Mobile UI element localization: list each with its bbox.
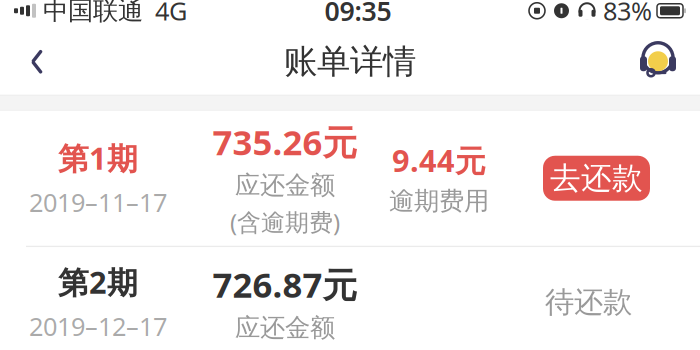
staticText: 726.87元 [212, 261, 357, 307]
staticText: (含逾期费) [230, 206, 340, 238]
button[interactable]: 去还款 [543, 156, 650, 201]
staticText: 第1期 [58, 138, 138, 178]
staticText: 2019–11–17 [29, 185, 167, 219]
staticText: 去还款 [550, 159, 643, 197]
staticText: 735.26元 [212, 119, 357, 165]
staticText: 9.44元 [392, 140, 486, 180]
staticText: 逾期费用 [389, 186, 489, 217]
staticText: 第2期 [58, 262, 138, 302]
staticText: 账单详情 [284, 41, 416, 82]
staticText: 中国联通 [43, 0, 143, 26]
staticText: 待还款 [545, 284, 632, 320]
button[interactable]: 返回 [10, 29, 64, 95]
staticText: 83% [603, 0, 652, 27]
button[interactable]: 客服 [626, 29, 690, 95]
staticText: 4G [155, 0, 187, 27]
staticText: 2019–12–17 [29, 309, 167, 343]
staticText: 09:35 [324, 0, 391, 28]
staticText: 应还金额 [235, 170, 335, 201]
staticText: 应还金额 [235, 312, 335, 343]
